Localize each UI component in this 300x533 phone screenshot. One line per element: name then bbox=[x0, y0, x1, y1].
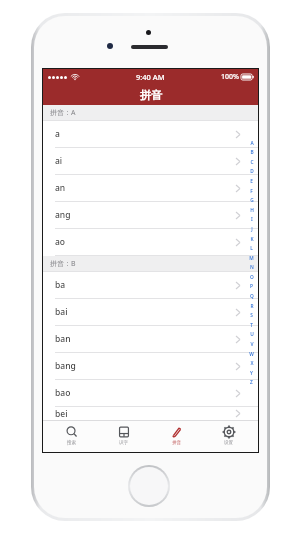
staticText: 搜索 bbox=[67, 440, 77, 446]
staticText: P bbox=[250, 283, 253, 290]
staticText: 100% bbox=[221, 72, 239, 82]
staticText: W bbox=[249, 351, 254, 358]
button[interactable]: 识字 bbox=[100, 420, 148, 452]
button[interactable]: a bbox=[43, 121, 258, 148]
staticText: J bbox=[251, 226, 253, 233]
staticText: 设置 bbox=[224, 440, 234, 446]
staticText: Z bbox=[250, 379, 253, 386]
button[interactable]: 搜索 bbox=[48, 420, 96, 452]
staticText: bai bbox=[55, 306, 68, 318]
staticText: 9:40 AM bbox=[136, 72, 165, 82]
staticText: L bbox=[250, 245, 253, 252]
staticText: bao bbox=[55, 387, 71, 399]
button[interactable]: bao bbox=[43, 380, 258, 407]
button[interactable]: 设置 bbox=[205, 420, 253, 452]
staticText: 拼音：B bbox=[50, 259, 76, 269]
staticText: A bbox=[250, 140, 254, 147]
staticText: 识字 bbox=[119, 440, 129, 446]
staticText: bei bbox=[55, 408, 68, 420]
staticText: ai bbox=[55, 155, 63, 167]
staticText: C bbox=[250, 159, 254, 166]
staticText: V bbox=[250, 341, 254, 348]
staticText: O bbox=[250, 274, 254, 281]
staticText: S bbox=[250, 312, 253, 319]
staticText: an bbox=[55, 182, 66, 194]
staticText: D bbox=[250, 168, 254, 175]
button[interactable]: bang bbox=[43, 353, 258, 380]
button[interactable]: bei bbox=[43, 407, 258, 420]
staticText: G bbox=[250, 197, 254, 204]
button[interactable]: bai bbox=[43, 299, 258, 326]
button[interactable]: ba bbox=[43, 272, 258, 299]
staticText: R bbox=[250, 303, 254, 310]
staticText: bang bbox=[55, 360, 76, 372]
staticText: ban bbox=[55, 333, 71, 345]
staticText: U bbox=[250, 331, 254, 338]
staticText: E bbox=[250, 178, 253, 185]
staticText: K bbox=[250, 236, 254, 243]
staticText: 拼音：A bbox=[50, 108, 76, 118]
staticText: ba bbox=[55, 279, 66, 291]
button[interactable]: ai bbox=[43, 148, 258, 175]
button[interactable]: ban bbox=[43, 326, 258, 353]
staticText: Q bbox=[250, 293, 254, 300]
staticText: Y bbox=[250, 370, 253, 377]
button[interactable]: an bbox=[43, 175, 258, 202]
staticText: ang bbox=[55, 209, 71, 221]
staticText: N bbox=[250, 264, 254, 271]
staticText: ao bbox=[55, 236, 66, 248]
button[interactable]: Alphabet index bbox=[247, 137, 256, 389]
staticText: H bbox=[250, 207, 254, 214]
staticText: a bbox=[55, 128, 60, 140]
button[interactable]: 拼音 bbox=[153, 420, 201, 452]
staticText: 拼音 bbox=[140, 88, 162, 102]
button[interactable]: ang bbox=[43, 202, 258, 229]
staticText: B bbox=[250, 149, 254, 156]
staticText: X bbox=[250, 360, 254, 367]
staticText: T bbox=[250, 322, 253, 329]
button[interactable]: ao bbox=[43, 229, 258, 256]
staticText: I bbox=[251, 216, 253, 223]
staticText: 拼音 bbox=[172, 440, 182, 446]
staticText: M bbox=[249, 255, 254, 262]
staticText: F bbox=[250, 188, 253, 195]
